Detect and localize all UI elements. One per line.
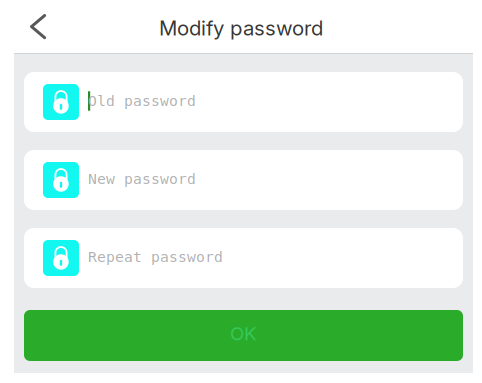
- button[interactable]: OK: [24, 310, 463, 361]
- staticText: OK: [230, 322, 257, 345]
- staticText: Modify password: [159, 16, 323, 40]
- staticText: Repeat password: [88, 248, 223, 266]
- button[interactable]: New password: [24, 150, 463, 210]
- staticText: New password: [88, 170, 196, 188]
- button[interactable]: Repeat password: [24, 228, 463, 288]
- staticText: Old password: [88, 92, 196, 110]
- button[interactable]: Back: [16, 0, 60, 52]
- button[interactable]: Old password: [24, 72, 463, 132]
